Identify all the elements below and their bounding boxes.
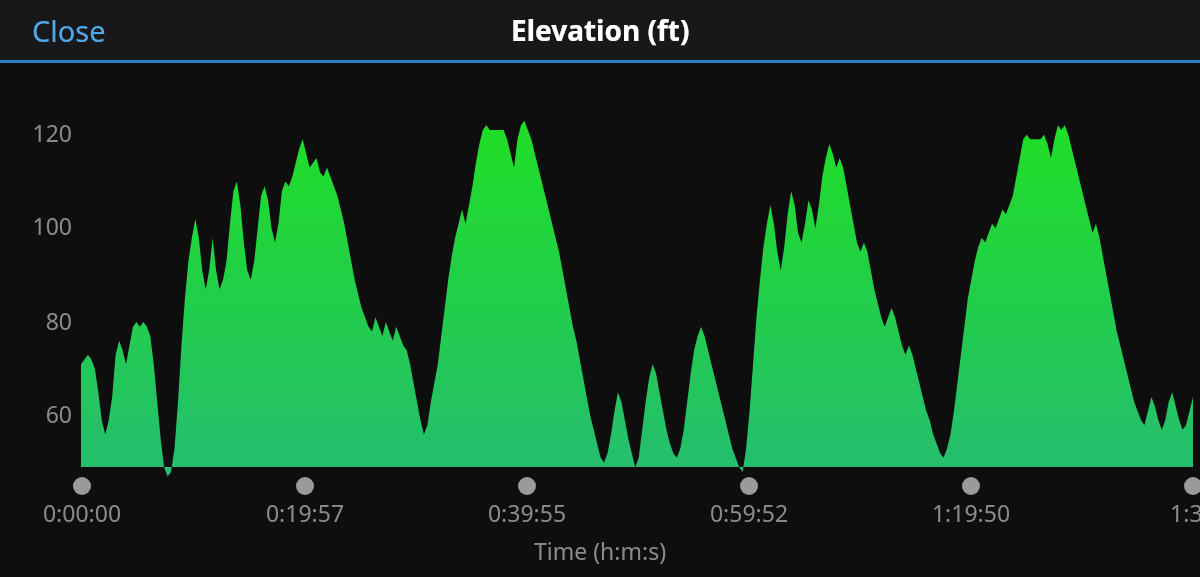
staticText: 1:19:50	[901, 497, 1041, 528]
staticText: 1:39:	[1126, 497, 1200, 528]
staticText: Time (h:m:s)	[534, 535, 667, 566]
button[interactable]: Close	[22, 3, 116, 58]
staticText: Elevation (ft)	[511, 11, 690, 49]
staticText: 60	[0, 398, 72, 429]
staticText: 0:19:57	[235, 497, 375, 528]
staticText: Close	[32, 11, 106, 50]
staticText: 120	[0, 117, 72, 148]
staticText: 0:39:55	[457, 497, 597, 528]
staticText: 80	[0, 305, 72, 336]
staticText: 0:00:00	[12, 497, 152, 528]
staticText: 0:59:52	[679, 497, 819, 528]
staticText: 100	[0, 210, 72, 241]
